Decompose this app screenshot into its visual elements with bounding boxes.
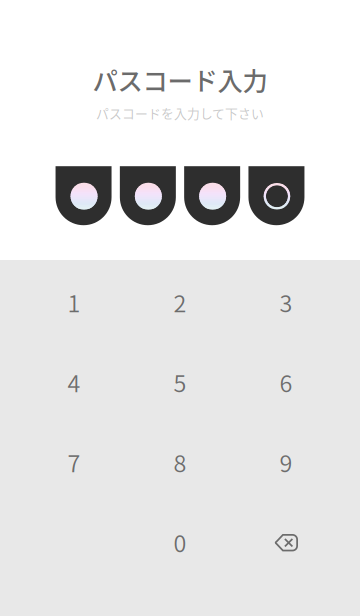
button[interactable]: 9 (233, 422, 339, 502)
staticText: 0 (173, 525, 186, 559)
staticText: 8 (173, 445, 186, 479)
button[interactable]: 0 (127, 502, 233, 582)
button[interactable]: Delete (233, 502, 339, 582)
staticText: パスコードを入力して下さい (96, 104, 264, 122)
button[interactable]: 2 (127, 262, 233, 342)
staticText: 4 (67, 365, 80, 399)
button[interactable]: 6 (233, 342, 339, 422)
staticText: パスコード入力 (92, 61, 267, 98)
button[interactable]: 3 (233, 262, 339, 342)
staticText: 3 (279, 285, 292, 319)
button[interactable]: 5 (127, 342, 233, 422)
button[interactable]: 7 (21, 422, 127, 502)
staticText: 2 (173, 285, 186, 319)
staticText: 1 (67, 285, 80, 319)
staticText: 9 (279, 445, 292, 479)
button[interactable]: 4 (21, 342, 127, 422)
button[interactable]: 1 (21, 262, 127, 342)
staticText: 5 (173, 365, 186, 399)
staticText: 6 (279, 365, 292, 399)
button[interactable]: 8 (127, 422, 233, 502)
staticText: 7 (67, 445, 80, 479)
